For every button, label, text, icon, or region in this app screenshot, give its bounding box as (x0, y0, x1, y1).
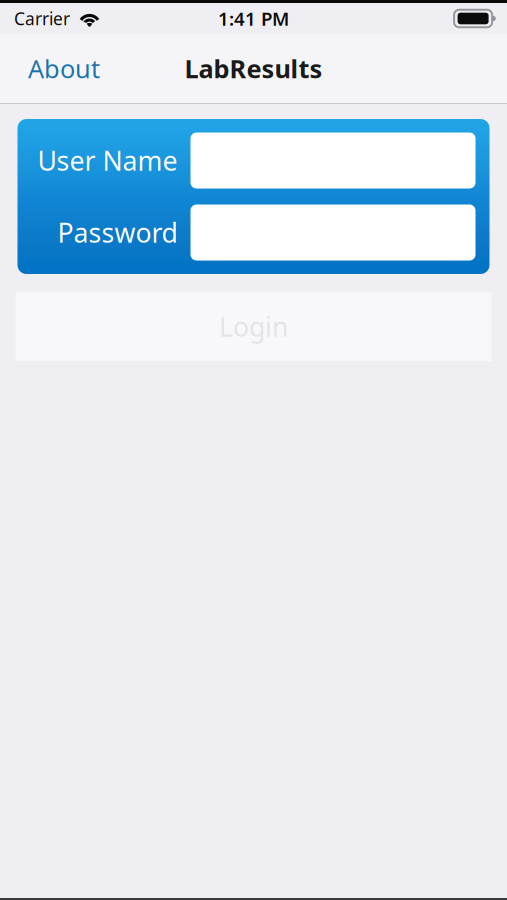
staticText: 1:41 PM (218, 6, 289, 31)
staticText: User Name (37, 143, 177, 178)
button[interactable]: User Name (190, 132, 475, 188)
staticText: About (28, 52, 100, 85)
staticText: LabResults (184, 52, 322, 85)
button[interactable]: About (0, 38, 120, 99)
button[interactable]: Password (190, 204, 475, 260)
staticText: Login (219, 309, 288, 344)
staticText: Password (57, 215, 177, 250)
staticText: Carrier (14, 7, 70, 30)
